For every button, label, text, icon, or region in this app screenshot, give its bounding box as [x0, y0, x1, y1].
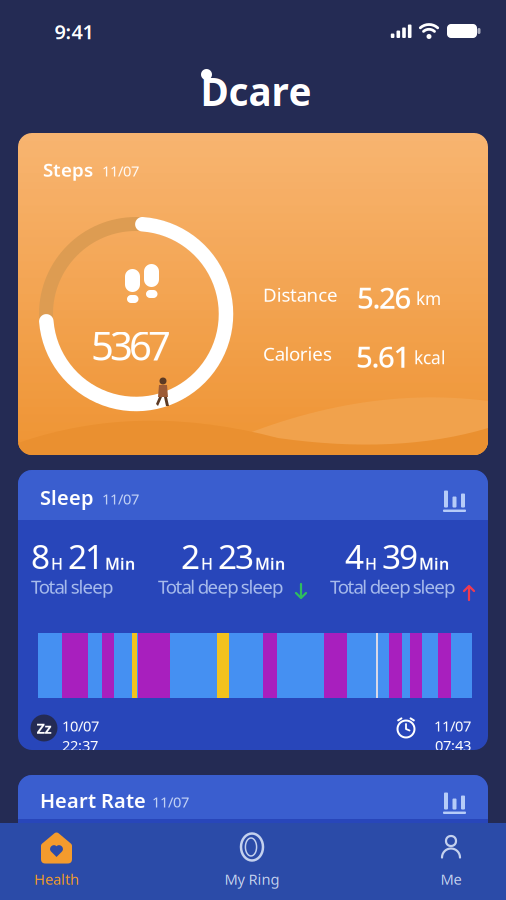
staticText: H: [365, 553, 377, 574]
staticText: 11/07: [152, 792, 189, 811]
staticText: 10/07: [62, 716, 99, 735]
staticText: kcal: [414, 346, 445, 369]
staticText: Me: [440, 869, 461, 889]
staticText: Min: [105, 553, 135, 574]
staticText: 11/07: [434, 716, 471, 735]
staticText: Heart Rate: [40, 787, 146, 814]
staticText: Total sleep: [31, 574, 113, 599]
staticText: 39: [382, 534, 418, 578]
staticText: H: [51, 553, 63, 574]
button[interactable]: Health: [0, 823, 113, 900]
staticText: Calories: [263, 341, 332, 366]
button[interactable]: [443, 485, 466, 509]
button[interactable]: Me: [395, 823, 506, 900]
staticText: 2: [181, 534, 200, 578]
staticText: Steps: [43, 157, 93, 182]
staticText: Dcare: [200, 65, 311, 117]
staticText: Total deep sleep: [158, 574, 283, 599]
staticText: 11/07: [102, 161, 139, 180]
staticText: 9:41: [54, 18, 93, 45]
staticText: Sleep: [40, 484, 94, 511]
staticText: 07:43: [435, 735, 471, 755]
staticText: km: [416, 287, 441, 310]
staticText: Health: [34, 869, 79, 889]
staticText: 5.26: [357, 278, 411, 317]
staticText: 11/07: [102, 489, 139, 508]
button[interactable]: My Ring: [196, 823, 309, 900]
staticText: 5367: [91, 318, 171, 371]
staticText: Min: [255, 553, 285, 574]
staticText: 4: [345, 534, 364, 578]
staticText: Distance: [263, 282, 338, 307]
button[interactable]: [443, 787, 466, 811]
button[interactable]: 5367: [18, 133, 488, 455]
staticText: H: [201, 553, 213, 574]
button[interactable]: Heart Rate: [18, 775, 488, 900]
staticText: 23: [218, 534, 254, 578]
button[interactable]: Sleep: [18, 470, 488, 750]
staticText: My Ring: [224, 869, 279, 889]
staticText: Min: [419, 553, 449, 574]
staticText: Total deep sleep: [330, 574, 455, 599]
staticText: 21: [68, 534, 104, 578]
staticText: 22:37: [62, 735, 98, 755]
staticText: 8: [31, 534, 50, 578]
staticText: 5.61: [356, 337, 410, 376]
staticText: Zz: [36, 718, 51, 738]
